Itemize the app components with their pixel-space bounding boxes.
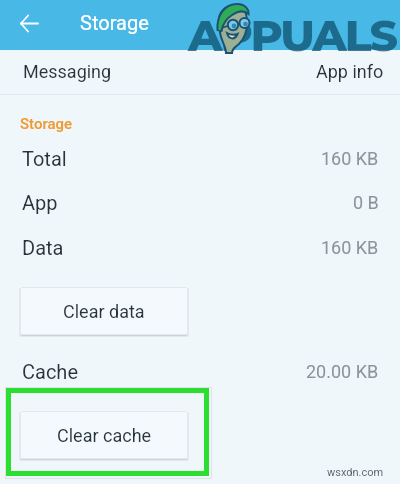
staticText: 0 B — [353, 192, 379, 213]
staticText: 160 KB — [321, 237, 379, 258]
button[interactable]: Data — [0, 227, 400, 267]
button[interactable]: App — [0, 182, 400, 222]
staticText: App — [22, 191, 58, 214]
staticText: wsxdn.com — [327, 466, 384, 479]
button[interactable]: Clear data — [20, 287, 188, 335]
staticText: Clear cache — [57, 425, 152, 446]
staticText: Total — [22, 147, 67, 170]
button[interactable]: Messaging — [0, 50, 400, 94]
button[interactable]: Total — [0, 138, 400, 178]
button[interactable]: Back — [12, 6, 46, 40]
staticText: 20.00 KB — [306, 361, 379, 382]
button[interactable]: Clear cache — [20, 411, 188, 459]
staticText: Storage — [80, 11, 149, 34]
staticText: APPUALS — [188, 8, 397, 62]
staticText: App info — [316, 61, 384, 82]
staticText: 160 KB — [321, 148, 379, 169]
button[interactable]: Cache — [0, 351, 400, 391]
staticText: Clear data — [63, 301, 145, 322]
staticText: Cache — [22, 360, 78, 383]
staticText: Data — [22, 236, 64, 259]
staticText: Messaging — [23, 61, 112, 82]
staticText: Storage — [20, 115, 73, 133]
